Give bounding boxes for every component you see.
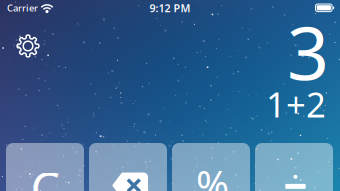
button[interactable]: Clear xyxy=(6,143,84,191)
staticText: % xyxy=(196,158,229,191)
staticText: 3 xyxy=(287,3,329,100)
staticText: 9:12 PM xyxy=(149,1,190,15)
staticText: 1+2 xyxy=(266,81,326,127)
button[interactable]: Settings xyxy=(11,29,45,63)
button[interactable]: Percent xyxy=(172,143,250,191)
button[interactable]: Delete xyxy=(89,143,167,191)
staticText: C xyxy=(30,157,59,191)
staticText: Carrier xyxy=(7,2,38,14)
button[interactable]: Divide xyxy=(255,143,333,191)
